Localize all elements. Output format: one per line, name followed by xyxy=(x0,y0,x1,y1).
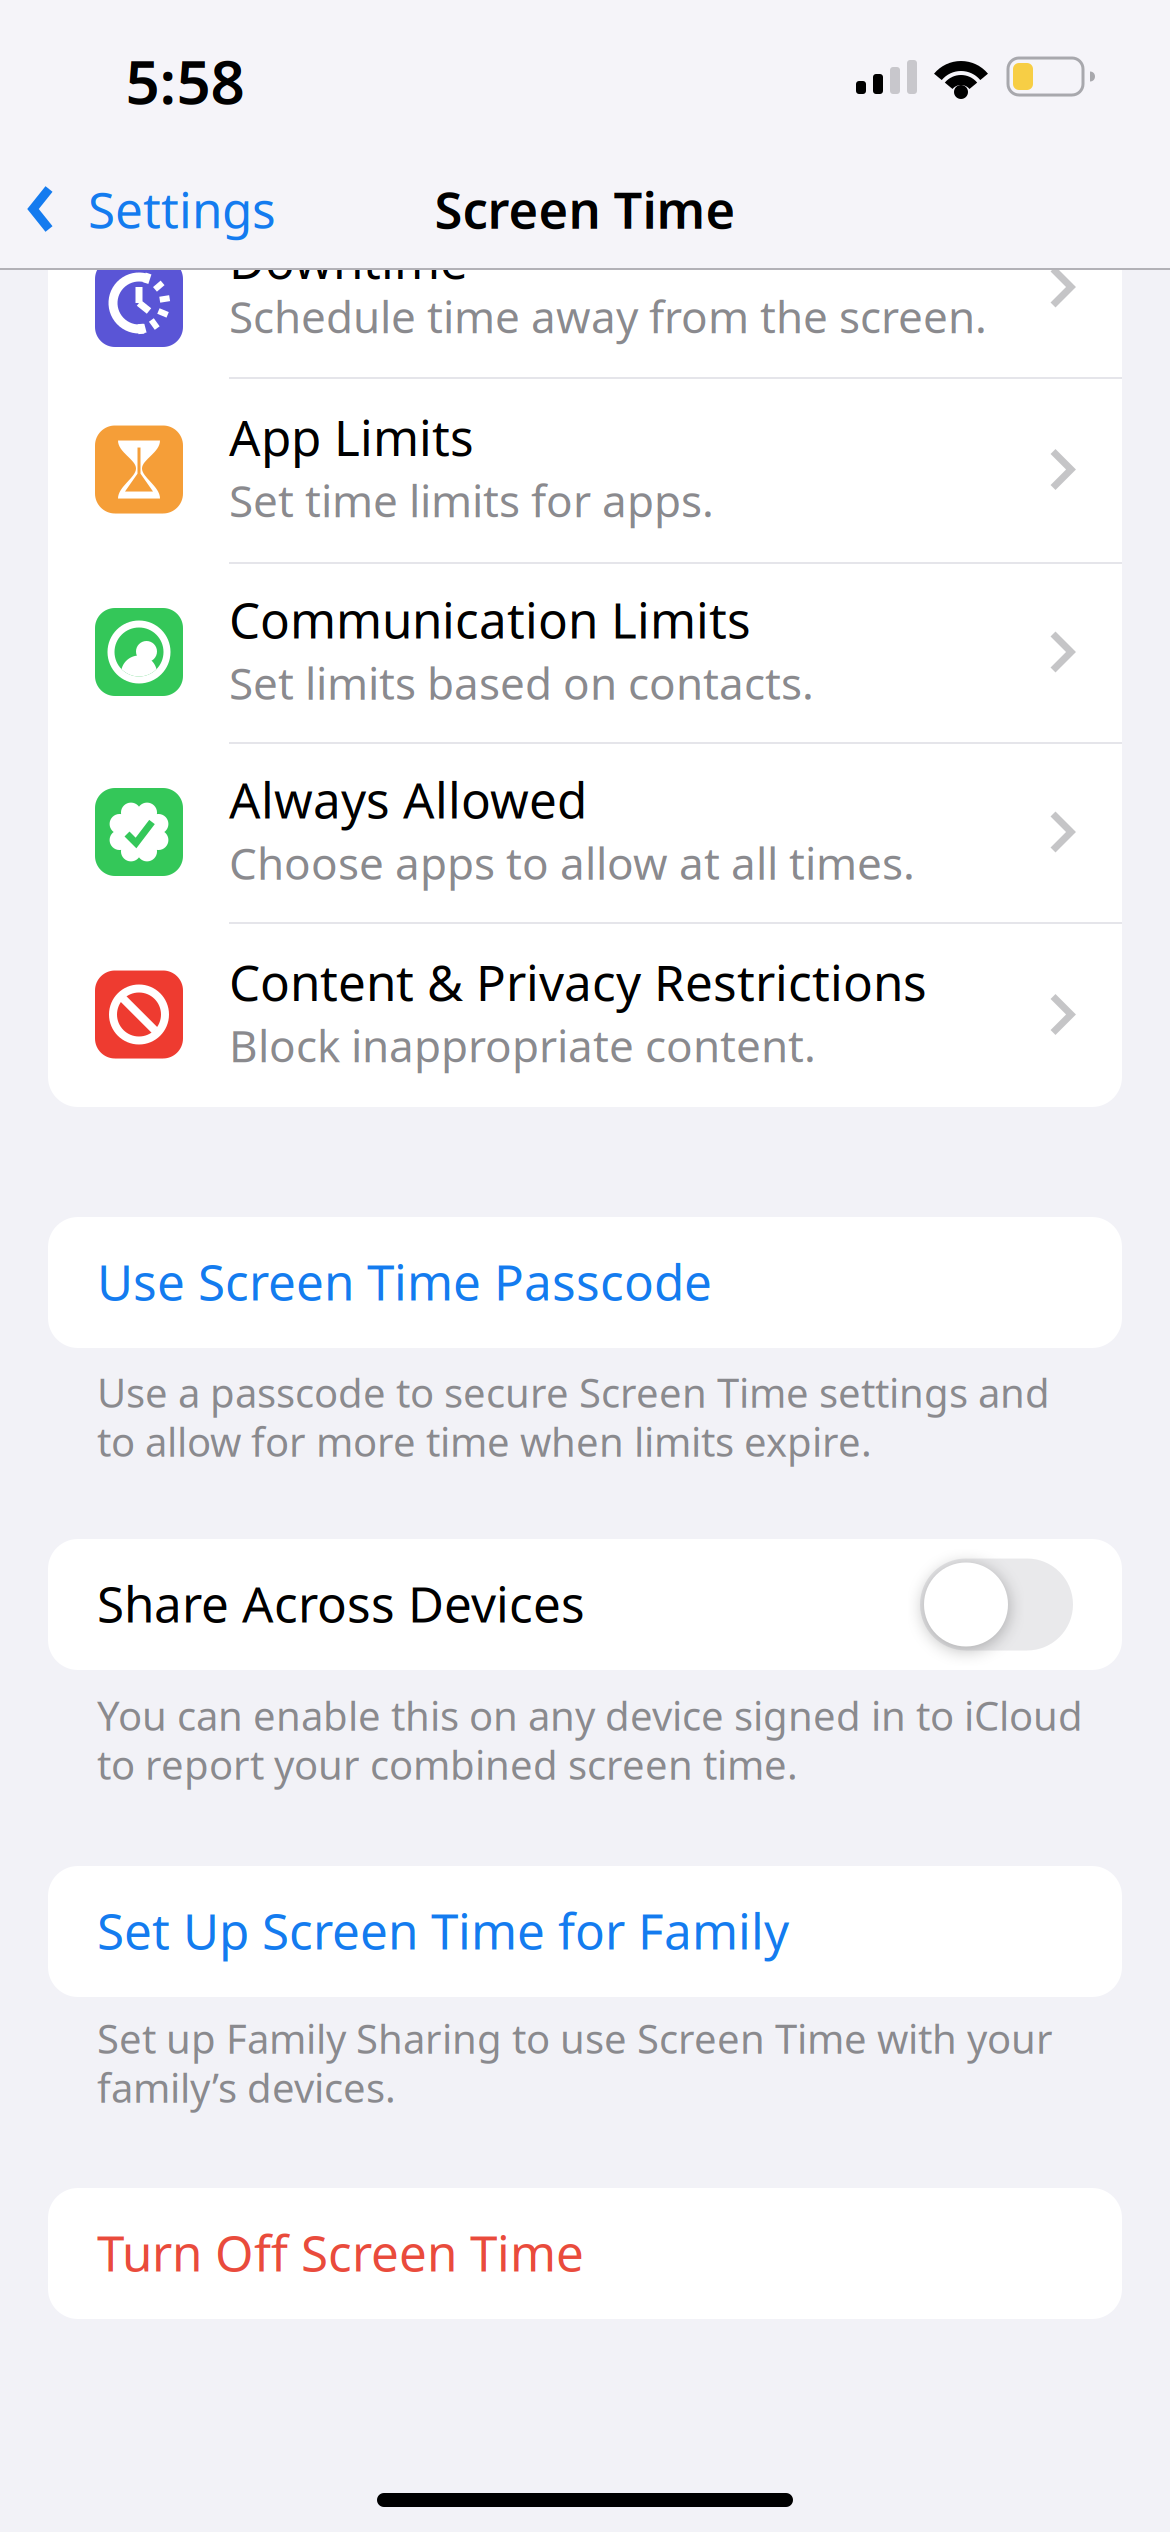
staticText: family’s devices. xyxy=(97,2061,396,2114)
button[interactable]: Use Screen Time Passcode xyxy=(48,1217,1122,1348)
staticText: Always Allowed xyxy=(229,767,587,832)
button[interactable]: Downtime xyxy=(48,240,1122,377)
staticText: Screen Time xyxy=(434,175,735,243)
staticText: 5:58 xyxy=(125,41,244,121)
staticText: Set up Family Sharing to use Screen Time… xyxy=(97,2012,1053,2065)
staticText: Schedule time away from the screen. xyxy=(229,287,987,345)
staticText: Share Across Devices xyxy=(97,1571,585,1636)
staticText: Block inappropriate content. xyxy=(229,1016,816,1074)
staticText: Content & Privacy Restrictions xyxy=(229,949,927,1015)
button[interactable]: Back to Settings xyxy=(28,178,276,240)
staticText: Choose apps to allow at all times. xyxy=(229,834,915,892)
staticText: Use Screen Time Passcode xyxy=(97,1249,712,1314)
button[interactable]: Content & Privacy Restrictions xyxy=(48,922,1122,1107)
staticText: Set time limits for apps. xyxy=(229,471,714,529)
button[interactable]: Share Across Devices xyxy=(920,1558,1073,1650)
staticText: Turn Off Screen Time xyxy=(97,2220,584,2285)
staticText: Set limits based on contacts. xyxy=(229,654,814,712)
staticText: Communication Limits xyxy=(229,587,751,652)
staticText: Set Up Screen Time for Family xyxy=(97,1898,789,1963)
button[interactable]: Communication Limits xyxy=(48,562,1122,742)
staticText: Downtime xyxy=(229,227,468,293)
staticText: to allow for more time when limits expir… xyxy=(97,1415,872,1468)
button[interactable]: App Limits xyxy=(48,377,1122,562)
staticText: Use a passcode to secure Screen Time set… xyxy=(97,1366,1050,1419)
staticText: You can enable this on any device signed… xyxy=(97,1689,1083,1742)
staticText: App Limits xyxy=(229,404,474,470)
staticText: to report your combined screen time. xyxy=(97,1738,798,1791)
button[interactable]: Always Allowed xyxy=(48,742,1122,922)
button[interactable]: Turn Off Screen Time xyxy=(48,2188,1122,2319)
staticText: Settings xyxy=(88,176,276,242)
button[interactable]: Set Up Screen Time for Family xyxy=(48,1866,1122,1997)
